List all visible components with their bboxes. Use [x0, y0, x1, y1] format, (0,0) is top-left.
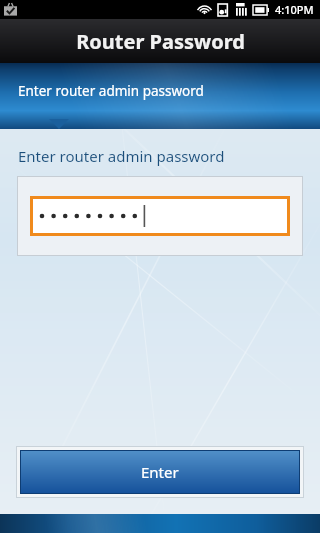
- staticText: Enter router admin password: [18, 82, 204, 100]
- staticText: 4:10PM: [275, 2, 314, 17]
- staticText: Enter router admin password: [18, 146, 225, 166]
- button[interactable]: Password input: [30, 196, 290, 236]
- staticText: Enter: [141, 462, 179, 482]
- button[interactable]: Enter: [20, 450, 300, 494]
- staticText: Router Password: [76, 28, 245, 55]
